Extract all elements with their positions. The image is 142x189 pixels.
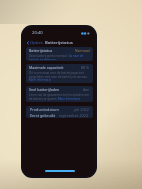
button[interactable]: Batterijstatus bbox=[26, 47, 93, 61]
staticText: Eerst gebruikt bbox=[30, 113, 56, 118]
button[interactable]: Snel batterijladen bbox=[26, 86, 93, 102]
staticText: Dit is een maat voor de batterijcapacite… bbox=[29, 71, 90, 82]
button[interactable]: Maximale capaciteit bbox=[26, 64, 93, 83]
staticText: Normaal bbox=[75, 48, 90, 53]
staticText: Productiedatum bbox=[30, 107, 59, 112]
staticText: Batterijstatus bbox=[29, 48, 53, 53]
button[interactable]: Eerst gebruikt bbox=[26, 112, 93, 118]
staticText: 20:40 bbox=[32, 30, 43, 36]
staticText: Maximale capaciteit bbox=[29, 65, 64, 70]
button[interactable]: Opties bbox=[23, 40, 45, 46]
staticText: september 2022 bbox=[59, 113, 89, 118]
staticText: Deze batterij werkt normaal. Ga naar de … bbox=[29, 54, 90, 60]
staticText: Opties bbox=[30, 40, 43, 46]
staticText: Leren van de gewoonten bij het opladen o… bbox=[29, 93, 90, 101]
staticText: juli 2022 bbox=[74, 107, 89, 112]
staticText: Snel batterijladen bbox=[29, 87, 60, 92]
staticText: Aan bbox=[83, 87, 90, 92]
staticText: Batterijstatus bbox=[45, 40, 73, 46]
staticText: 88 % bbox=[81, 65, 90, 70]
button[interactable]: Productiedatum bbox=[26, 106, 93, 112]
